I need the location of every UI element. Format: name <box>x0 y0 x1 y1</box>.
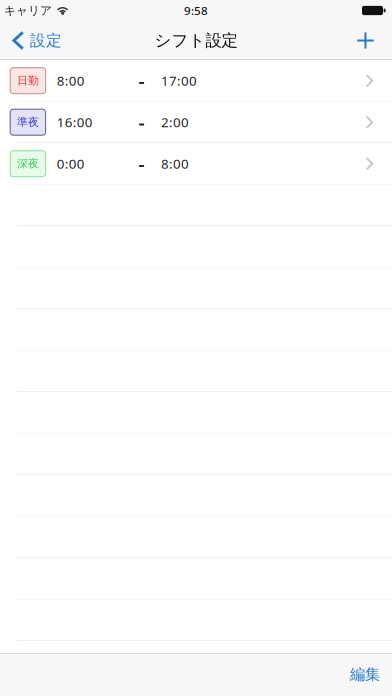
button[interactable]: 準夜 <box>0 101 392 143</box>
staticText: 8:00 <box>161 155 189 173</box>
staticText: 設定 <box>30 31 62 50</box>
button[interactable]: 編集 <box>338 653 392 696</box>
button[interactable]: 新規追加 <box>347 21 392 60</box>
button[interactable]: 日勤 <box>0 60 392 101</box>
staticText: 準夜 <box>17 115 39 129</box>
staticText: 0:00 <box>57 155 85 173</box>
button[interactable]: 設定 <box>0 21 72 60</box>
staticText: 編集 <box>350 665 380 684</box>
staticText: キャリア <box>4 3 52 18</box>
staticText: 8:00 <box>57 72 85 90</box>
staticText: 9:58 <box>184 3 208 18</box>
staticText: 2:00 <box>161 113 189 131</box>
staticText: 日勤 <box>17 74 39 88</box>
staticText: 深夜 <box>17 157 39 171</box>
staticText: 16:00 <box>57 113 93 131</box>
staticText: シフト設定 <box>154 30 237 51</box>
staticText: 17:00 <box>161 72 197 90</box>
button[interactable]: 深夜 <box>0 143 392 184</box>
